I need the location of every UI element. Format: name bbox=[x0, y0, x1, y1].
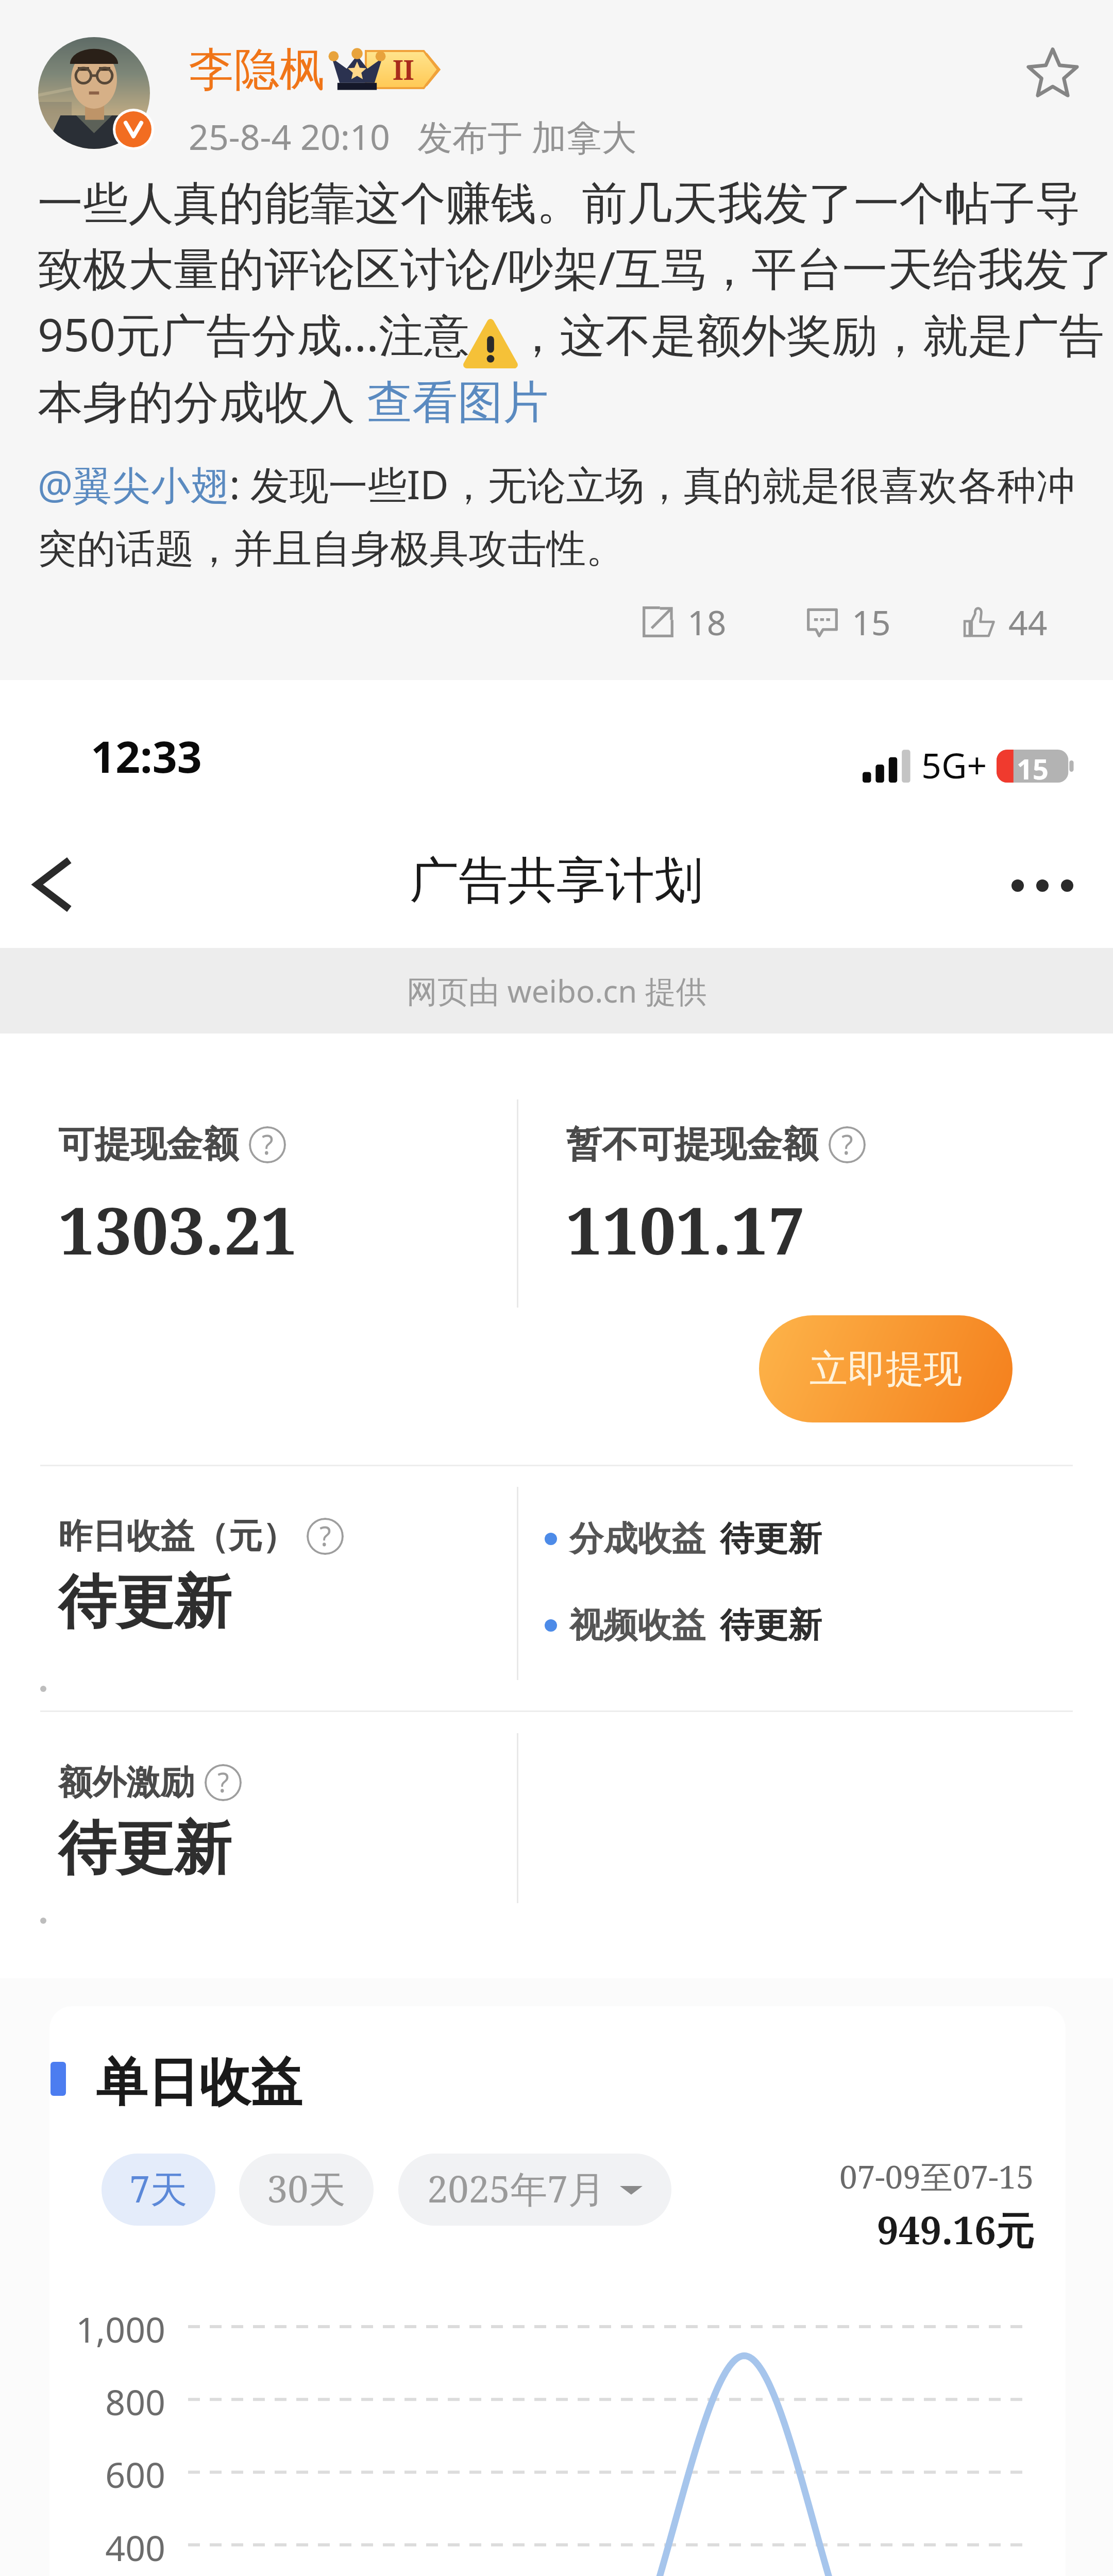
staticText: 视频收益 bbox=[569, 1604, 705, 1647]
staticText: 44 bbox=[1008, 599, 1048, 645]
button[interactable]: 7天 bbox=[102, 2154, 215, 2226]
staticText: 600 bbox=[49, 2450, 165, 2498]
button[interactable]: 立即提现 bbox=[759, 1315, 1013, 1422]
button[interactable]: 2025年7月 bbox=[398, 2154, 671, 2226]
button[interactable]: Favorite bbox=[1024, 45, 1081, 102]
staticText: 07-09至07-15 bbox=[839, 2155, 1034, 2198]
staticText: 立即提现 bbox=[810, 1345, 962, 1393]
staticText: 30天 bbox=[267, 2163, 346, 2213]
staticText: 网页由 weibo.cn 提供 bbox=[407, 970, 707, 1012]
staticText: 7天 bbox=[129, 2163, 188, 2213]
staticText: 分成收益 bbox=[569, 1517, 705, 1560]
staticText: 待更新 bbox=[720, 1517, 822, 1560]
staticText: 昨日收益（元） bbox=[58, 1515, 296, 1557]
staticText: 2025年7月 bbox=[427, 2163, 605, 2213]
button[interactable]: Help bbox=[249, 1126, 286, 1163]
button[interactable]: More options bbox=[996, 864, 1089, 907]
staticText: 15 bbox=[1017, 750, 1049, 783]
staticText: 12:33 bbox=[91, 726, 202, 785]
staticText: 949.16元 bbox=[877, 2204, 1034, 2256]
staticText: 暂不可提现金额 bbox=[566, 1122, 818, 1167]
staticText: 单日收益 bbox=[96, 2050, 302, 2115]
staticText: ? bbox=[262, 1126, 274, 1162]
staticText: 5G+ bbox=[921, 741, 987, 789]
staticText: 额外激励 bbox=[58, 1761, 194, 1804]
staticText: 待更新 bbox=[58, 1566, 231, 1639]
staticText: 待更新 bbox=[720, 1604, 822, 1647]
staticText: ? bbox=[319, 1518, 331, 1554]
staticText: 18 bbox=[687, 599, 727, 645]
staticText: 25-8-4 20:10 发布于 加拿大 bbox=[189, 112, 637, 160]
staticText: 1101.17 bbox=[566, 1185, 805, 1274]
staticText: 一些人真的能靠这个赚钱。前几天我发了一个帖子导 致极大量的评论区讨论/吵架/互骂… bbox=[38, 175, 1113, 431]
staticText: ? bbox=[841, 1126, 853, 1162]
staticText: 李隐枫 bbox=[189, 41, 325, 98]
staticText: 1303.21 bbox=[58, 1185, 298, 1274]
staticText: II bbox=[393, 51, 414, 88]
staticText: 可提现金额 bbox=[58, 1122, 239, 1167]
staticText: ? bbox=[217, 1764, 229, 1800]
staticText: 待更新 bbox=[58, 1812, 231, 1885]
staticText: 1,000 bbox=[49, 2305, 165, 2353]
button[interactable]: Help bbox=[205, 1764, 242, 1801]
button[interactable]: Like 44 bbox=[963, 599, 1048, 645]
button[interactable]: Comment 15 bbox=[806, 599, 891, 645]
staticText: @翼尖小翅: 发现一些ID，无论立场，真的就是很喜欢各种冲 突的话题，并且自身极… bbox=[38, 457, 1075, 574]
staticText: 15 bbox=[852, 599, 891, 645]
staticText: 800 bbox=[49, 2378, 165, 2426]
staticText: 400 bbox=[49, 2523, 165, 2571]
button[interactable]: Help bbox=[829, 1126, 866, 1163]
staticText: 广告共享计划 bbox=[410, 850, 703, 912]
button[interactable]: Repost 18 bbox=[642, 599, 727, 645]
button[interactable]: Back bbox=[19, 843, 101, 926]
button[interactable]: Help bbox=[307, 1518, 344, 1555]
button[interactable]: 30天 bbox=[239, 2154, 374, 2226]
